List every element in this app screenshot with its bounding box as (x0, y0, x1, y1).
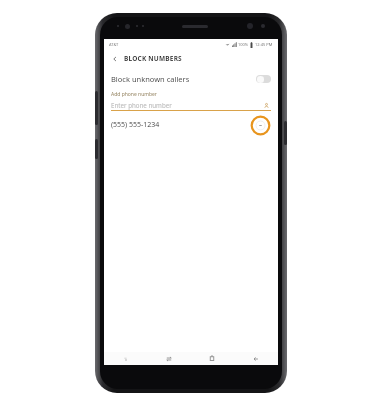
button[interactable]: (555) 555-1234 (104, 114, 278, 136)
staticText: BLOCK NUMBERS (124, 54, 182, 63)
button[interactable]: Back (234, 352, 278, 365)
button[interactable]: Keyboard (104, 352, 147, 365)
button[interactable]: Recents (147, 352, 190, 365)
button[interactable]: Home (190, 352, 234, 365)
button[interactable]: Remove number (250, 115, 271, 136)
staticText: Enter phone number (111, 101, 172, 109)
button[interactable]: Open contacts (262, 101, 271, 110)
staticText: (555) 555-1234 (111, 120, 160, 130)
button[interactable]: Back (108, 52, 122, 66)
staticText: AT&T (109, 42, 119, 47)
button[interactable]: Block unknown callers (104, 67, 278, 91)
staticText: 100% (238, 42, 249, 47)
staticText: 12:45 PM (255, 42, 273, 47)
staticText: Block unknown callers (111, 74, 190, 84)
staticText: Add phone number (111, 91, 157, 98)
